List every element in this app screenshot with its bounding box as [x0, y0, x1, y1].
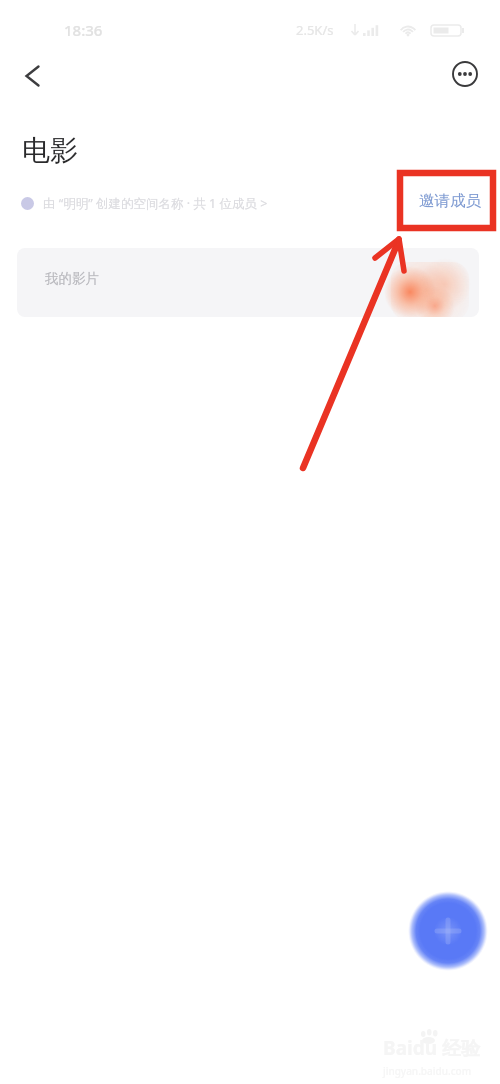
staticText: 18:36: [64, 20, 103, 40]
staticText: 电影: [22, 133, 78, 168]
staticText: jingyan.baidu.com: [383, 1064, 472, 1078]
button[interactable]: 我的影片: [17, 248, 479, 317]
staticText: 由 “明明” 创建的空间名称 · 共 1 位成员 >: [43, 195, 268, 212]
staticText: 我的影片: [45, 270, 99, 287]
button[interactable]: Add: [406, 889, 490, 973]
button[interactable]: 邀请成员: [411, 184, 489, 218]
button[interactable]: More options: [444, 53, 486, 95]
button[interactable]: Back: [11, 52, 55, 96]
staticText: 2.5K/s: [296, 21, 334, 39]
staticText: 邀请成员: [419, 191, 481, 211]
staticText: Baidu 经验: [383, 1035, 480, 1061]
